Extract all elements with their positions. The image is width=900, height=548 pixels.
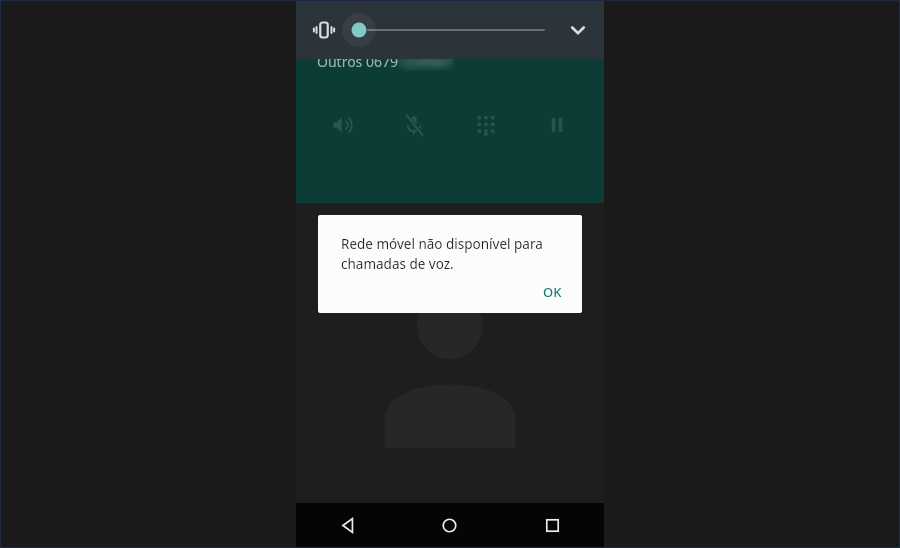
button[interactable]: Speaker — [319, 101, 367, 149]
button[interactable]: OK — [531, 275, 574, 309]
button[interactable]: Ringer mode vibrate — [308, 14, 340, 46]
button[interactable]: Hold — [533, 101, 581, 149]
staticText: Rede móvel não disponível para chamadas … — [341, 235, 543, 273]
button[interactable]: Back — [296, 503, 398, 547]
staticText: OK — [543, 283, 562, 301]
button[interactable]: Home — [398, 503, 501, 547]
staticText: Outros 0679 — [317, 52, 398, 71]
button[interactable]: Recents — [501, 503, 604, 547]
button[interactable]: Volume slider — [348, 10, 548, 50]
button[interactable]: Expand volume controls — [558, 10, 598, 50]
button[interactable]: Dialpad — [462, 101, 510, 149]
button[interactable]: Mute microphone — [390, 101, 438, 149]
staticText: 1234567 — [397, 52, 454, 71]
staticText: Desconhecido — [317, 15, 450, 41]
